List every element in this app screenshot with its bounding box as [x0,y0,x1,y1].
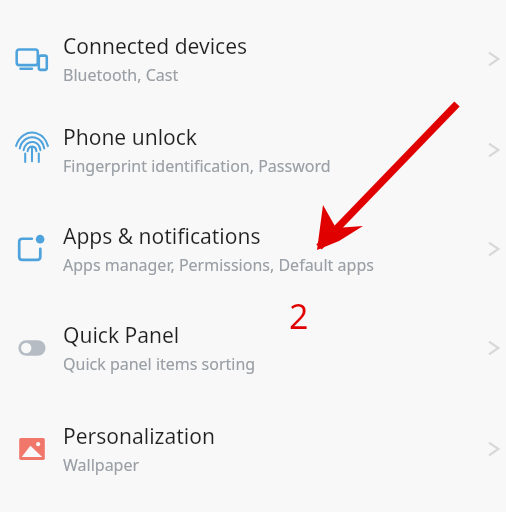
staticText: Apps manager, Permissions, Default apps [63,254,374,276]
other: Apps and notifications [16,233,48,265]
staticText: Personalization [63,422,215,451]
staticText: Quick panel items sorting [63,353,256,375]
other: Personalization [16,433,48,465]
button[interactable]: Quick Panel [0,298,506,398]
button[interactable]: Phone unlock [0,100,506,200]
staticText: 2 [289,293,309,339]
staticText: Phone unlock [63,123,198,152]
staticText: Quick Panel [63,321,180,350]
staticText: Wallpaper [63,454,140,476]
button[interactable]: Apps and notifications [0,200,506,298]
other: Connected devices [15,42,49,76]
staticText: Bluetooth, Cast [63,64,179,86]
button[interactable]: Personalization [0,398,506,498]
button[interactable]: Connected devices [0,0,506,100]
staticText: Fingerprint identification, Password [63,155,331,177]
other: Quick Panel [15,331,49,365]
staticText: Connected devices [63,32,248,61]
staticText: Apps & notifications [63,222,261,251]
other: Phone unlock [15,133,49,167]
